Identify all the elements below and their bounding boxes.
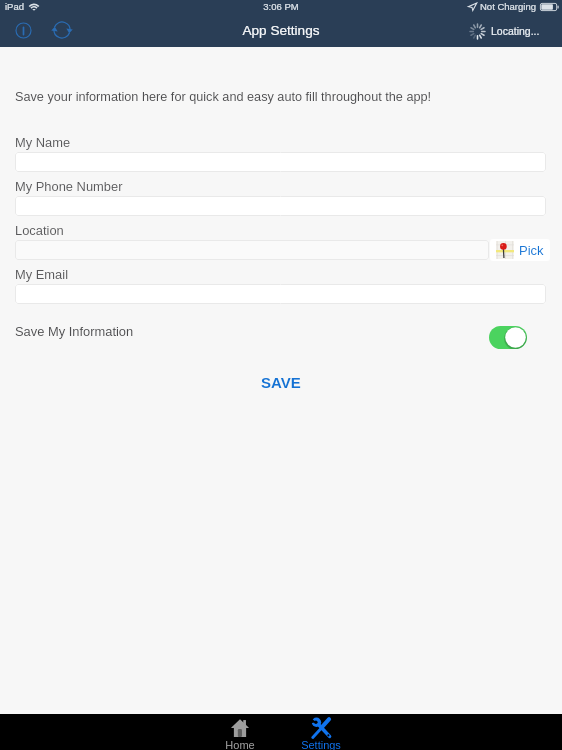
button[interactable]	[15, 196, 546, 216]
staticText: SAVE	[261, 374, 301, 391]
staticText: Settings	[301, 739, 341, 750]
button[interactable]: Info	[8, 15, 38, 45]
staticText: Not Charging	[480, 1, 536, 12]
staticText: Locating...	[491, 25, 540, 37]
button[interactable]	[15, 152, 546, 172]
button[interactable]: Home	[208, 714, 272, 750]
button[interactable]	[15, 284, 546, 304]
staticText: iPad	[5, 1, 25, 12]
staticText: Save My Information	[15, 324, 134, 338]
staticText: Pick	[519, 243, 544, 258]
button[interactable]: SAVE	[221, 370, 341, 394]
staticText: My Name	[15, 135, 71, 149]
button[interactable]: Settings	[289, 714, 353, 750]
staticText: Home	[225, 739, 255, 750]
staticText: Save your information here for quick and…	[15, 90, 432, 104]
button[interactable]: Save My Information toggle	[489, 326, 527, 349]
staticText: 3:06 PM	[0, 1, 562, 12]
staticText: My Phone Number	[15, 179, 123, 193]
button[interactable]: Locating status	[470, 15, 540, 47]
staticText: App Settings	[0, 23, 562, 38]
button[interactable]	[15, 240, 489, 260]
staticText: My Email	[15, 267, 68, 281]
button[interactable]: Refresh	[47, 15, 77, 45]
staticText: Location	[15, 223, 64, 237]
button[interactable]: Pick	[490, 239, 550, 261]
